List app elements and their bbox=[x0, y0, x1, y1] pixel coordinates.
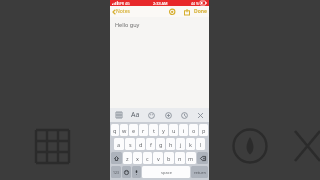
staticText: Done bbox=[194, 8, 207, 15]
button[interactable]: Tool 3 bbox=[177, 108, 191, 122]
button[interactable]: Emoji bbox=[122, 166, 131, 178]
staticText: u bbox=[172, 127, 176, 134]
staticText: 2:33 AM bbox=[153, 1, 168, 6]
staticText: Notes bbox=[116, 8, 130, 15]
staticText: w bbox=[122, 127, 127, 134]
button[interactable]: Text format bbox=[105, 120, 190, 180]
button[interactable]: b bbox=[164, 152, 174, 164]
staticText: x bbox=[136, 155, 139, 162]
staticText: b bbox=[167, 155, 171, 162]
staticText: h bbox=[169, 141, 173, 148]
staticText: s bbox=[129, 141, 132, 148]
staticText: n bbox=[178, 155, 182, 162]
button[interactable]: Markup bbox=[220, 120, 280, 180]
button[interactable]: n bbox=[175, 152, 185, 164]
staticText: space bbox=[161, 170, 172, 175]
button[interactable]: m bbox=[186, 152, 196, 164]
button[interactable]: Table bbox=[0, 120, 105, 180]
button[interactable]: t bbox=[149, 124, 158, 136]
button[interactable]: Dictate bbox=[132, 166, 141, 178]
staticText: j bbox=[180, 141, 182, 148]
staticText: l bbox=[200, 141, 202, 148]
button[interactable]: q bbox=[111, 124, 119, 136]
staticText: d bbox=[139, 141, 143, 148]
button[interactable]: Attach bbox=[166, 6, 177, 17]
button[interactable]: z bbox=[123, 152, 132, 164]
button[interactable]: Close bbox=[295, 120, 320, 180]
button[interactable]: y bbox=[159, 124, 168, 136]
staticText: Hello guy bbox=[115, 21, 140, 28]
button[interactable]: x bbox=[133, 152, 142, 164]
button[interactable]: Table bbox=[112, 108, 126, 122]
staticText: a bbox=[117, 141, 121, 148]
button[interactable]: v bbox=[153, 152, 163, 164]
button[interactable]: Aa bbox=[128, 108, 142, 122]
staticText: t bbox=[153, 127, 155, 134]
staticText: 123 bbox=[113, 170, 120, 175]
button[interactable]: Tool 2 bbox=[161, 108, 175, 122]
staticText: 4G bbox=[125, 1, 130, 6]
staticText: c bbox=[146, 155, 149, 162]
button[interactable]: h bbox=[166, 138, 175, 150]
button[interactable]: Share bbox=[181, 6, 192, 17]
staticText: g bbox=[159, 141, 163, 148]
button[interactable]: a bbox=[114, 138, 124, 150]
button[interactable]: r bbox=[139, 124, 148, 136]
staticText: 44 % bbox=[191, 1, 199, 6]
button[interactable]: d bbox=[136, 138, 145, 150]
button[interactable]: Backspace bbox=[197, 152, 208, 164]
button[interactable]: 123 bbox=[111, 166, 121, 178]
staticText: z bbox=[126, 155, 129, 162]
staticText: Aa bbox=[131, 110, 140, 120]
button[interactable]: w bbox=[120, 124, 128, 136]
button[interactable]: o bbox=[189, 124, 198, 136]
staticText: SFR bbox=[118, 1, 124, 6]
button[interactable]: i bbox=[179, 124, 188, 136]
staticText: k bbox=[189, 141, 192, 148]
button[interactable]: p bbox=[199, 124, 208, 136]
staticText: return bbox=[194, 170, 206, 175]
button[interactable]: space bbox=[142, 166, 190, 178]
staticText: p bbox=[202, 127, 206, 134]
button[interactable]: g bbox=[156, 138, 165, 150]
button[interactable]: f bbox=[146, 138, 155, 150]
staticText: i bbox=[183, 127, 185, 134]
button[interactable]: c bbox=[143, 152, 152, 164]
button[interactable]: Done bbox=[194, 6, 207, 17]
staticText: o bbox=[192, 127, 196, 134]
button[interactable]: e bbox=[129, 124, 138, 136]
button[interactable]: Tool 1 bbox=[144, 108, 158, 122]
staticText: r bbox=[142, 127, 145, 134]
staticText: Aa bbox=[124, 120, 172, 174]
staticText: q bbox=[113, 127, 117, 134]
button[interactable]: l bbox=[196, 138, 205, 150]
button[interactable]: s bbox=[125, 138, 135, 150]
button[interactable]: Notes bbox=[112, 6, 130, 17]
staticText: m bbox=[188, 155, 194, 162]
button[interactable]: return bbox=[191, 166, 208, 178]
staticText: y bbox=[162, 127, 165, 134]
button[interactable]: k bbox=[186, 138, 195, 150]
staticText: e bbox=[132, 127, 136, 134]
button[interactable]: u bbox=[169, 124, 178, 136]
button[interactable]: j bbox=[176, 138, 185, 150]
staticText: v bbox=[157, 155, 160, 162]
button[interactable]: Hide keyboard bbox=[193, 108, 207, 122]
staticText: f bbox=[150, 141, 152, 148]
button[interactable]: Shift bbox=[111, 152, 122, 164]
